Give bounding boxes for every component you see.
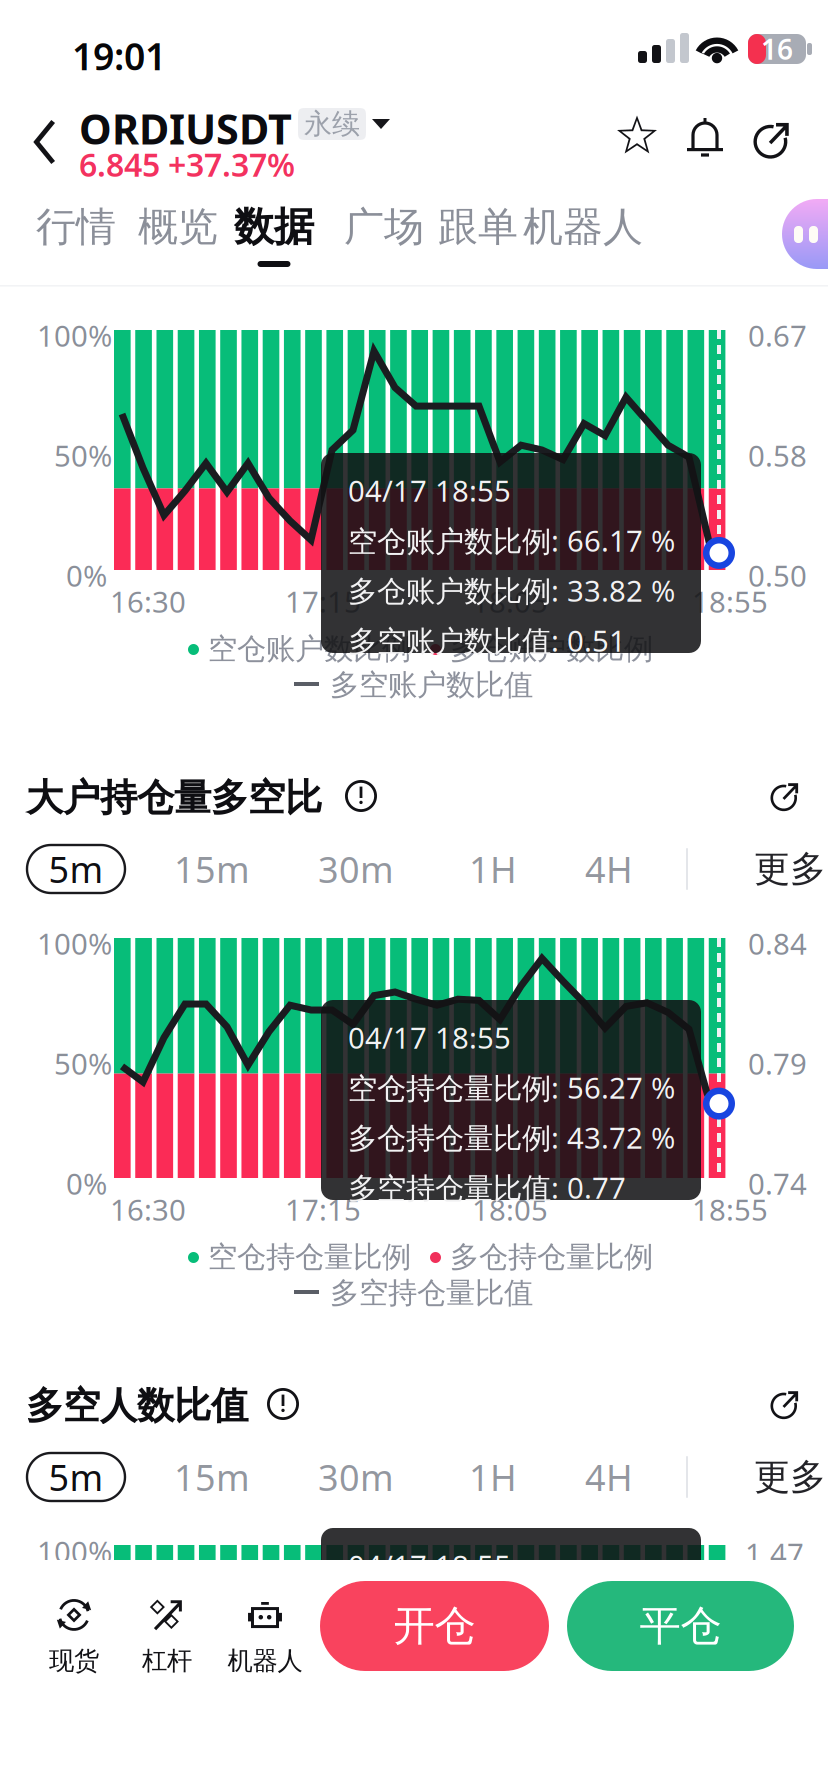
staticText: 0.50: [748, 556, 807, 595]
button[interactable]: 5m: [27, 1453, 125, 1501]
staticText: 04/17 18:55: [348, 1546, 511, 1585]
staticText: 18:05: [472, 582, 548, 621]
button[interactable]: 5m: [27, 845, 125, 893]
button[interactable]: 平仓: [567, 1581, 794, 1671]
button[interactable]: 跟单: [427, 203, 529, 267]
staticText: 17:15: [285, 1190, 361, 1229]
staticText: 多仓持仓量比例: 43.72 %: [348, 1118, 675, 1157]
button[interactable]: Favorite: [606, 105, 670, 169]
staticText: 行情: [36, 202, 116, 251]
button[interactable]: Open detail: [757, 1375, 813, 1431]
staticText: ORDIUSDT: [79, 101, 292, 156]
staticText: 18:05: [472, 1190, 548, 1229]
staticText: 0.84: [748, 924, 807, 963]
staticText: 100%: [37, 316, 112, 355]
staticText: 更多: [754, 1455, 826, 1499]
staticText: 5m: [48, 845, 103, 893]
staticText: 1.47: [745, 1534, 804, 1573]
button[interactable]: 开仓: [320, 1581, 549, 1671]
staticText: 30m: [318, 1453, 394, 1501]
staticText: 空仓账户数比例: [208, 631, 411, 667]
button[interactable]: Back: [14, 109, 78, 177]
staticText: 1H: [469, 1453, 517, 1501]
staticText: 19:01: [72, 31, 166, 81]
staticText: 数据: [234, 202, 314, 251]
button[interactable]: Alerts: [674, 105, 738, 169]
staticText: 跟单: [438, 202, 518, 251]
button[interactable]: 15m: [162, 1453, 262, 1501]
staticText: 4H: [585, 1453, 633, 1501]
staticText: 100%: [37, 1532, 112, 1571]
staticText: 平仓: [639, 1601, 721, 1651]
button[interactable]: Open detail: [757, 767, 813, 823]
button[interactable]: 行情: [25, 203, 127, 267]
staticText: 广场: [344, 202, 424, 251]
staticText: 空仓持仓量比例: [208, 1239, 411, 1275]
staticText: 多空持仓量比值: 0.77: [348, 1168, 626, 1207]
button[interactable]: 更多: [745, 845, 828, 893]
staticText: 多空账户数比值: [330, 667, 533, 703]
button[interactable]: 广场: [333, 203, 435, 267]
staticText: 6.845 +37.37%: [79, 143, 295, 185]
staticText: 50%: [54, 1044, 112, 1083]
staticText: 04/17 18:55: [348, 471, 511, 510]
button[interactable]: 现货: [29, 1586, 119, 1686]
staticText: 多空账户数比值: 0.51: [348, 621, 626, 660]
button[interactable]: 30m: [306, 845, 406, 893]
staticText: 机器人: [523, 202, 643, 251]
staticText: 04/17 18:55: [348, 1018, 511, 1057]
staticText: 杠杆: [142, 1645, 192, 1676]
button[interactable]: Share: [740, 106, 804, 170]
staticText: 0.74: [748, 1164, 807, 1203]
button[interactable]: 15m: [162, 845, 262, 893]
staticText: 100%: [37, 924, 112, 963]
staticText: 空仓账户数比例: 66.17 %: [348, 521, 675, 560]
staticText: 5m: [48, 1453, 103, 1501]
staticText: 多仓账户数比例: 33.82 %: [348, 571, 675, 610]
staticText: 15m: [174, 1453, 250, 1501]
staticText: 多仓账户数比例: [450, 631, 653, 667]
staticText: 18:55: [692, 582, 768, 621]
button[interactable]: 4H: [559, 845, 659, 893]
staticText: 现货: [49, 1645, 99, 1676]
staticText: 1H: [469, 845, 517, 893]
staticText: 开仓: [393, 1601, 475, 1651]
staticText: 0.67: [748, 316, 807, 355]
staticText: 机器人: [227, 1645, 302, 1676]
staticText: 17:15: [285, 582, 361, 621]
staticText: 18:55: [692, 1190, 768, 1229]
staticText: 概览: [138, 202, 218, 251]
staticText: 永续: [304, 107, 360, 141]
staticText: 0.79: [748, 1044, 807, 1083]
staticText: 4H: [585, 845, 633, 893]
staticText: 16:30: [110, 582, 186, 621]
button[interactable]: 数据: [223, 203, 325, 267]
staticText: 多空持仓量比值: [330, 1275, 533, 1311]
staticText: 空仓持仓量比例: 56.27 %: [348, 1068, 675, 1107]
staticText: 更多: [754, 847, 826, 891]
staticText: 多仓持仓量比例: [450, 1239, 653, 1275]
button[interactable]: Assistant: [782, 199, 828, 269]
staticText: 0%: [66, 1164, 107, 1203]
staticText: 15m: [174, 845, 250, 893]
button[interactable]: 30m: [306, 1453, 406, 1501]
staticText: 50%: [54, 436, 112, 475]
button[interactable]: 4H: [559, 1453, 659, 1501]
button[interactable]: 概览: [127, 203, 229, 267]
button[interactable]: 1H: [443, 845, 543, 893]
staticText: 多空人数比值: [26, 1383, 248, 1429]
staticText: 0%: [66, 556, 107, 595]
staticText: 30m: [318, 845, 394, 893]
button[interactable]: 机器人: [512, 203, 654, 267]
button[interactable]: 杠杆: [122, 1586, 212, 1686]
button[interactable]: 更多: [745, 1453, 828, 1501]
staticText: 0.58: [748, 436, 807, 475]
staticText: 16:30: [110, 1190, 186, 1229]
button[interactable]: 机器人: [215, 1586, 315, 1686]
staticText: 16: [761, 30, 793, 68]
button[interactable]: 1H: [443, 1453, 543, 1501]
staticText: 大户持仓量多空比: [26, 775, 322, 821]
